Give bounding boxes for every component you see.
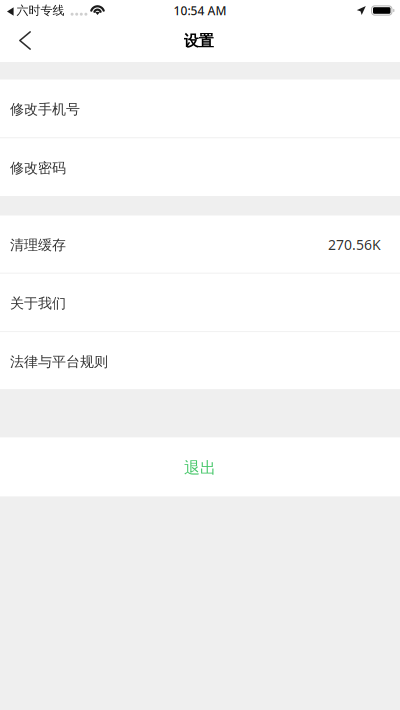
- button[interactable]: 修改密码: [0, 138, 400, 196]
- button[interactable]: 返回: [0, 24, 50, 62]
- button[interactable]: 关于我们: [0, 274, 400, 331]
- button[interactable]: 修改手机号: [0, 79, 400, 137]
- staticText: 六时专线: [17, 3, 65, 18]
- staticText: 关于我们: [10, 295, 66, 312]
- staticText: 修改手机号: [10, 101, 80, 118]
- button[interactable]: 退出: [0, 437, 400, 496]
- staticText: 设置: [183, 31, 213, 51]
- staticText: 清理缓存: [10, 236, 66, 254]
- staticText: 270.56K: [328, 235, 381, 254]
- staticText: 法律与平台规则: [10, 353, 108, 370]
- button[interactable]: 法律与平台规则: [0, 332, 400, 389]
- button[interactable]: 清理缓存: [0, 215, 400, 273]
- staticText: 10:54 AM: [173, 2, 226, 19]
- staticText: 退出: [184, 458, 216, 478]
- staticText: 修改密码: [10, 159, 66, 177]
